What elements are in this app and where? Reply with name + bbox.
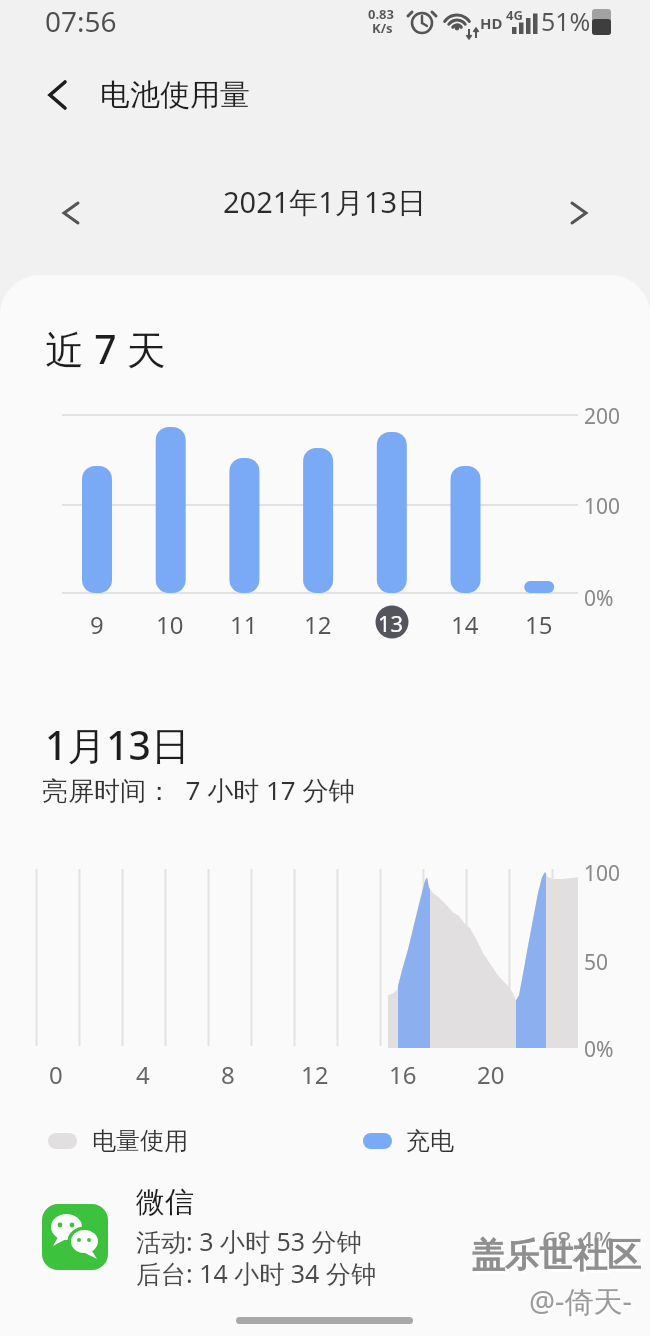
staticText: 活动: 3 小时 53 分钟	[136, 1224, 362, 1258]
staticText: 13	[378, 608, 404, 638]
staticText: 16	[389, 1058, 417, 1091]
button[interactable]	[368, 598, 416, 646]
button[interactable]	[30, 1192, 620, 1284]
staticText: 0	[49, 1058, 63, 1091]
staticText: 100	[584, 492, 621, 521]
button[interactable]	[46, 189, 94, 237]
staticText: 0.83	[368, 5, 394, 23]
staticText: 2021年1月13日	[223, 182, 427, 222]
staticText: 0%	[584, 1035, 614, 1064]
staticText: 近 7 天	[45, 322, 166, 375]
staticText: 盖乐世社区	[474, 1237, 644, 1280]
staticText: 0%	[584, 584, 614, 613]
staticText: K/s	[372, 19, 393, 37]
staticText: 8	[221, 1058, 235, 1091]
staticText: 11	[230, 608, 258, 641]
staticText: 100	[584, 859, 621, 888]
staticText: 充电	[406, 1126, 454, 1156]
staticText: 电池使用量	[100, 76, 250, 114]
staticText: @-倚天-	[531, 1283, 634, 1323]
staticText: 10	[156, 608, 184, 641]
staticText: 12	[301, 1058, 329, 1091]
staticText: 电量使用	[92, 1126, 188, 1156]
staticText: 68.4%	[542, 1222, 616, 1257]
staticText: 51%	[541, 4, 591, 38]
staticText: @-倚天-	[529, 1281, 632, 1321]
staticText: 微信	[136, 1184, 194, 1221]
staticText: 4	[136, 1058, 150, 1091]
staticText: 亮屏时间： 7 小时 17 分钟	[42, 772, 355, 808]
staticText: HD	[480, 13, 503, 33]
staticText: 后台: 14 小时 34 分钟	[136, 1256, 376, 1290]
button[interactable]	[36, 71, 84, 119]
staticText: 9	[90, 608, 104, 641]
staticText: 07:56	[45, 2, 117, 40]
staticText: 20	[477, 1058, 505, 1091]
staticText: 50	[584, 948, 609, 977]
staticText: 200	[584, 402, 621, 431]
staticText: 4G	[506, 6, 523, 24]
staticText: 14	[451, 608, 479, 641]
staticText: 1月13日	[45, 718, 190, 771]
button[interactable]	[556, 189, 604, 237]
staticText: 15	[525, 608, 553, 641]
staticText: 12	[304, 608, 332, 641]
staticText: 盖乐世社区	[471, 1234, 641, 1277]
